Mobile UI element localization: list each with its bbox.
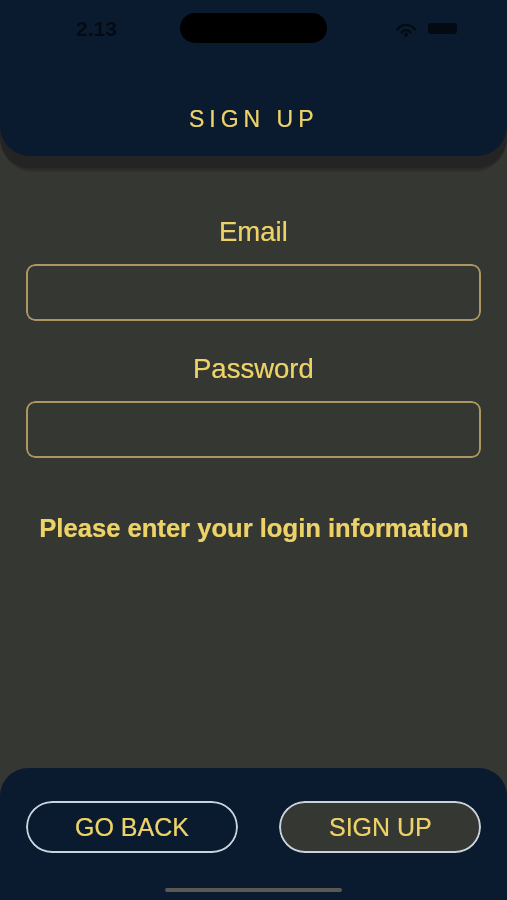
staticText: 2.13 xyxy=(76,17,117,40)
staticText: Password xyxy=(193,353,314,384)
staticText: GO BACK xyxy=(75,813,189,841)
button[interactable]: Password input xyxy=(26,401,481,458)
staticText: Email xyxy=(219,216,288,247)
other: Wi-Fi xyxy=(394,21,418,36)
button[interactable]: Email input xyxy=(26,264,481,321)
staticText: SIGN UP xyxy=(329,813,432,841)
button[interactable]: GO BACK xyxy=(26,801,238,853)
staticText: Please enter your login information xyxy=(39,514,469,543)
staticText: SIGN UP xyxy=(189,106,319,132)
button[interactable]: SIGN UP xyxy=(279,801,481,853)
